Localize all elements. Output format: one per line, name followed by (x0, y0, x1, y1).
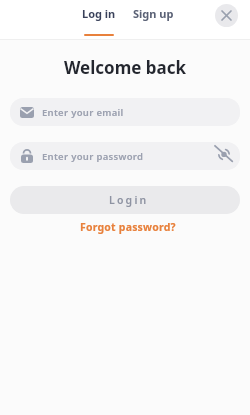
staticText: Enter your password (42, 150, 215, 163)
staticText: Login (109, 193, 149, 207)
staticText: Enter your email (42, 106, 124, 119)
button[interactable] (215, 4, 238, 27)
staticText: Welcome back (0, 56, 250, 79)
button[interactable]: Enter your password (10, 142, 240, 170)
button[interactable]: Log in (82, 0, 116, 36)
button[interactable]: Forgot password? (80, 220, 176, 234)
staticText: Forgot password? (80, 220, 176, 234)
staticText: Log in (82, 6, 116, 21)
button[interactable]: Sign up (133, 0, 174, 21)
button[interactable]: Enter your email (10, 98, 240, 126)
button[interactable]: Login (10, 186, 240, 214)
staticText: Sign up (133, 6, 174, 21)
